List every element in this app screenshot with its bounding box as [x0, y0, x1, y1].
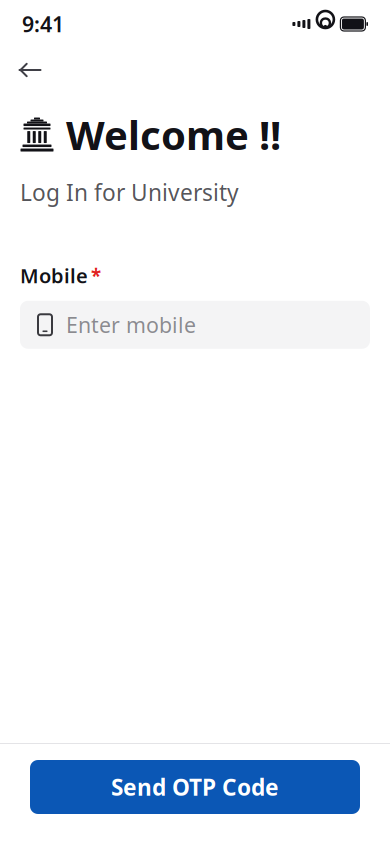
staticText: Mobile [20, 262, 88, 289]
staticText: Enter mobile [66, 311, 196, 339]
staticText: Send OTP Code [111, 772, 279, 802]
staticText: 9:41 [22, 10, 64, 38]
button[interactable]: Send OTP Code [30, 760, 360, 814]
staticText: * [91, 263, 101, 288]
button[interactable]: Back [8, 50, 52, 90]
staticText: Log In for University [20, 177, 239, 207]
staticText: Welcome !! [66, 108, 281, 161]
